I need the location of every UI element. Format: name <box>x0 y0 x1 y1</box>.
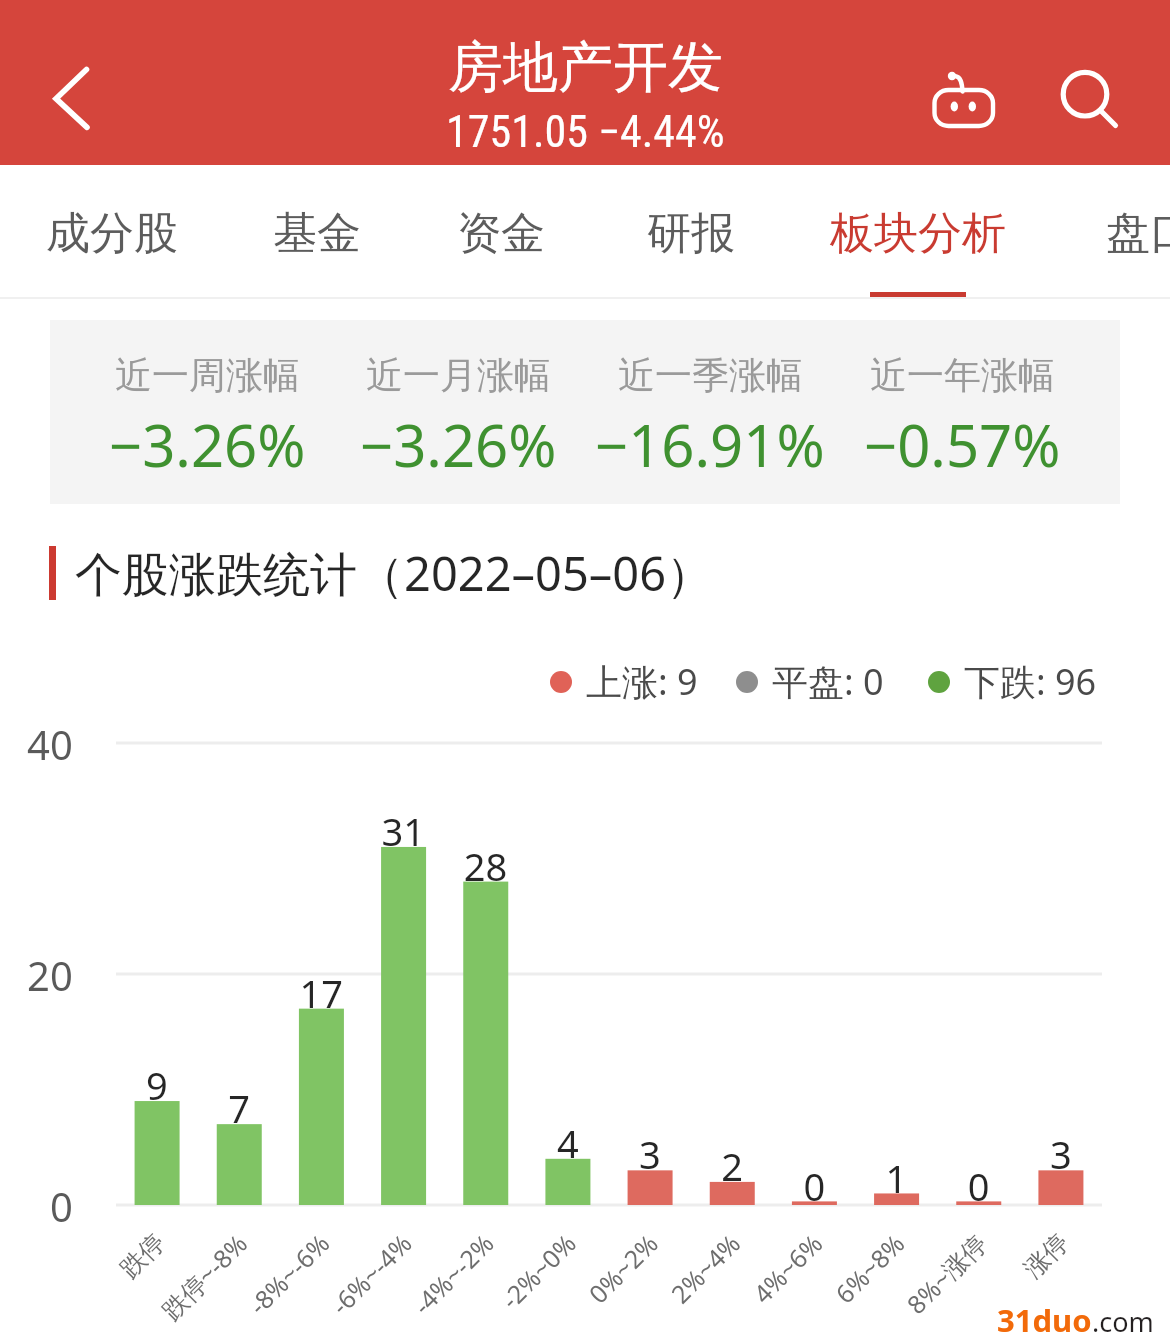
staticText: 下跌: 96 <box>964 657 1097 706</box>
button[interactable]: 研报 <box>596 168 786 299</box>
button[interactable]: Back <box>26 45 116 145</box>
button[interactable]: 资金 <box>407 168 595 299</box>
staticText: 板块分析 <box>830 206 1006 261</box>
staticText: 平盘: 0 <box>772 657 884 706</box>
staticText: −3.26% <box>360 405 557 484</box>
staticText: 成分股 <box>46 206 178 261</box>
staticText: 个股涨跌统计（2022–05–06） <box>75 541 714 605</box>
staticText: 近一季涨幅 <box>618 352 803 399</box>
staticText: 资金 <box>457 206 545 261</box>
staticText: 研报 <box>647 206 735 261</box>
button[interactable]: Assistant <box>910 45 1006 145</box>
staticText: 上涨: 9 <box>586 657 698 706</box>
staticText: 1751.05 −4.44% <box>446 106 725 158</box>
staticText: −16.91% <box>595 405 825 484</box>
button[interactable]: 盘口 <box>1056 168 1170 299</box>
staticText: −0.57% <box>864 405 1061 484</box>
staticText: 近一年涨幅 <box>870 352 1055 399</box>
button[interactable]: 板块分析 <box>782 168 1054 299</box>
button[interactable]: 成分股 <box>0 168 229 299</box>
staticText: 近一周涨幅 <box>115 352 300 399</box>
button[interactable]: 基金 <box>224 168 409 299</box>
staticText: 房地产开发 <box>448 33 723 102</box>
staticText: −3.26% <box>109 405 306 484</box>
staticText: 盘口 <box>1106 206 1170 261</box>
staticText: 基金 <box>273 206 361 261</box>
button[interactable]: Search <box>1040 45 1136 145</box>
staticText: 近一月涨幅 <box>366 352 551 399</box>
